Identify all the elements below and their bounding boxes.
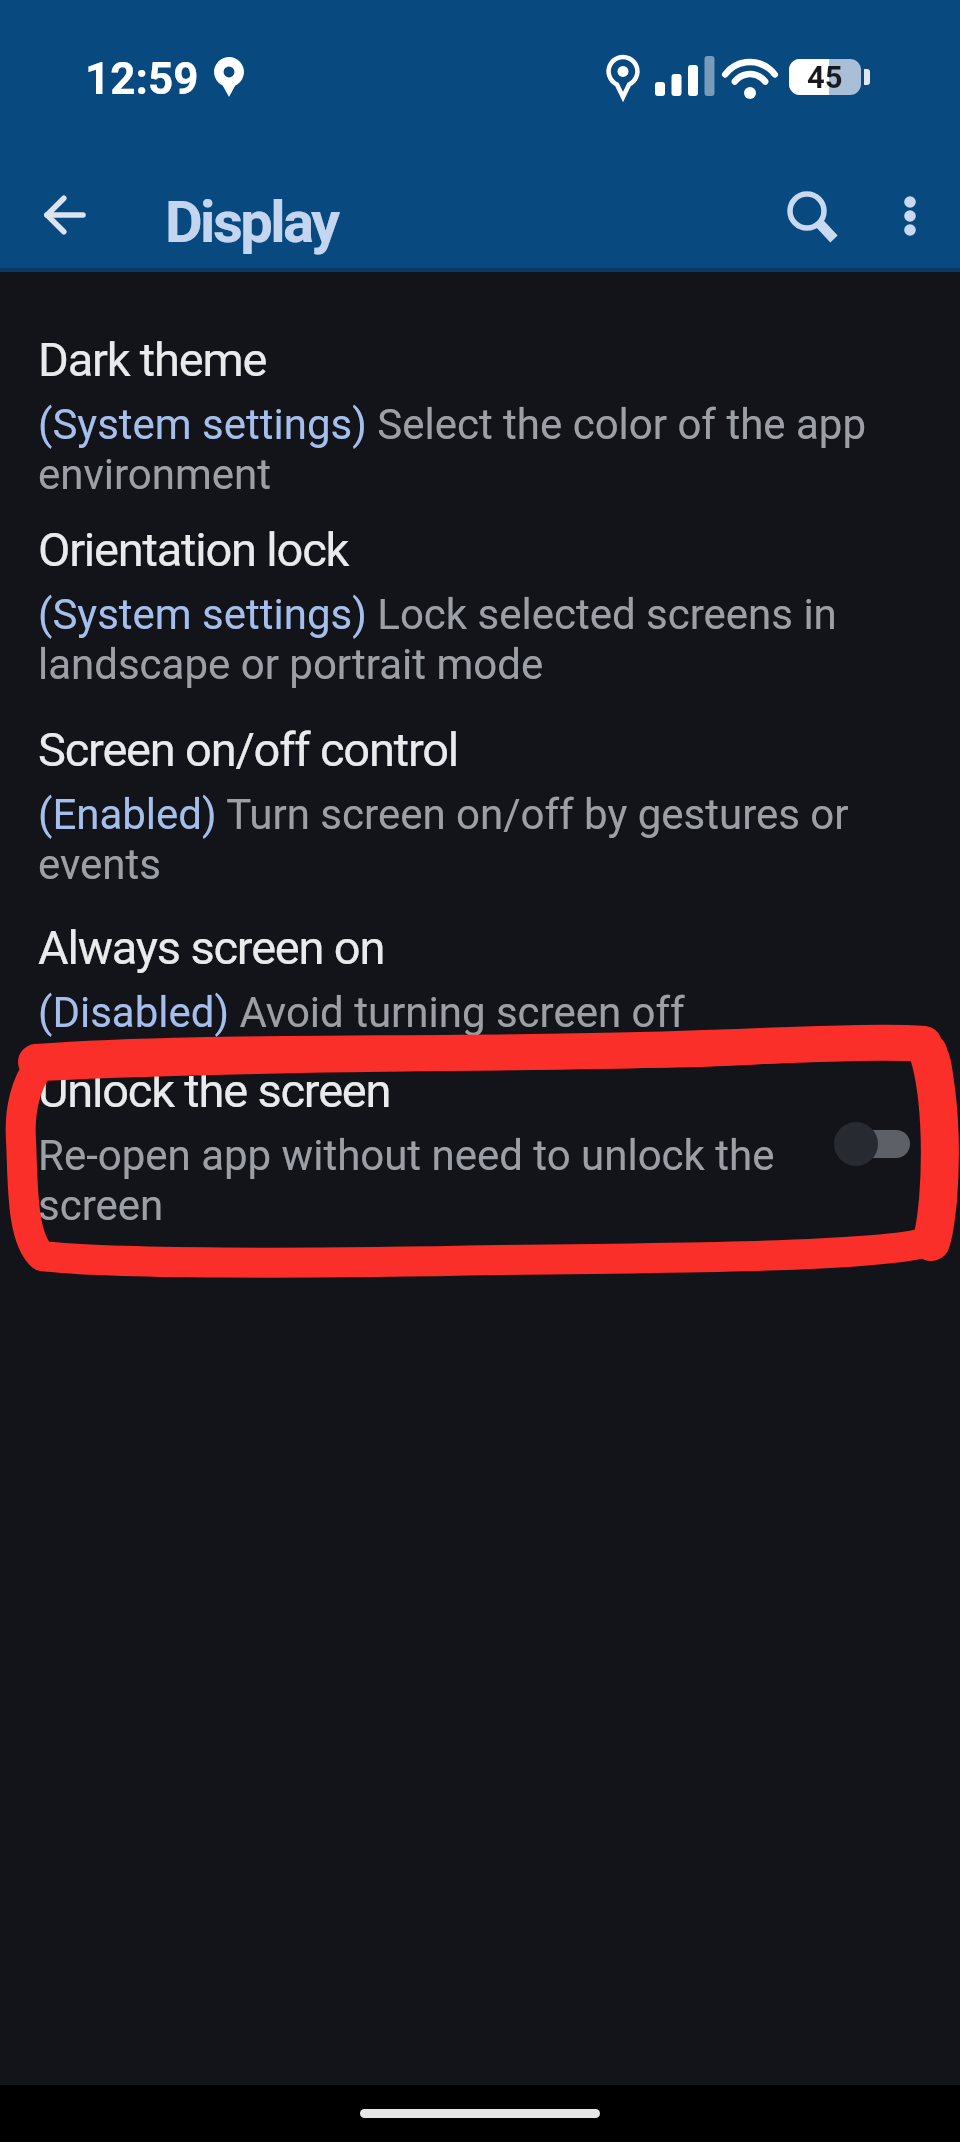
staticText: (Enabled) Turn screen on/off by gestures… — [38, 790, 849, 889]
staticText: (Disabled) Avoid turning screen off — [38, 988, 685, 1037]
staticText: Always screen on — [38, 920, 385, 975]
staticText: Screen on/off control — [38, 722, 458, 777]
staticText: Dark theme — [38, 332, 267, 387]
staticText: (System settings) Select the color of th… — [38, 400, 866, 499]
staticText: Re-open app without need to unlock the s… — [38, 1131, 775, 1230]
button[interactable] — [884, 189, 936, 241]
staticText: 12:59 — [85, 53, 199, 105]
staticText: Display — [165, 188, 338, 256]
staticText: Orientation lock — [38, 522, 349, 577]
button[interactable] — [0, 918, 960, 1038]
button[interactable] — [0, 720, 960, 890]
button[interactable] — [0, 1061, 960, 1231]
button[interactable] — [38, 188, 92, 242]
staticText: Unlock the screen — [38, 1063, 391, 1118]
button[interactable] — [781, 185, 843, 247]
button[interactable] — [834, 1122, 910, 1166]
staticText: 45 — [807, 59, 843, 95]
button[interactable] — [0, 330, 960, 500]
staticText: (System settings) Lock selected screens … — [38, 590, 837, 689]
button[interactable] — [0, 520, 960, 690]
